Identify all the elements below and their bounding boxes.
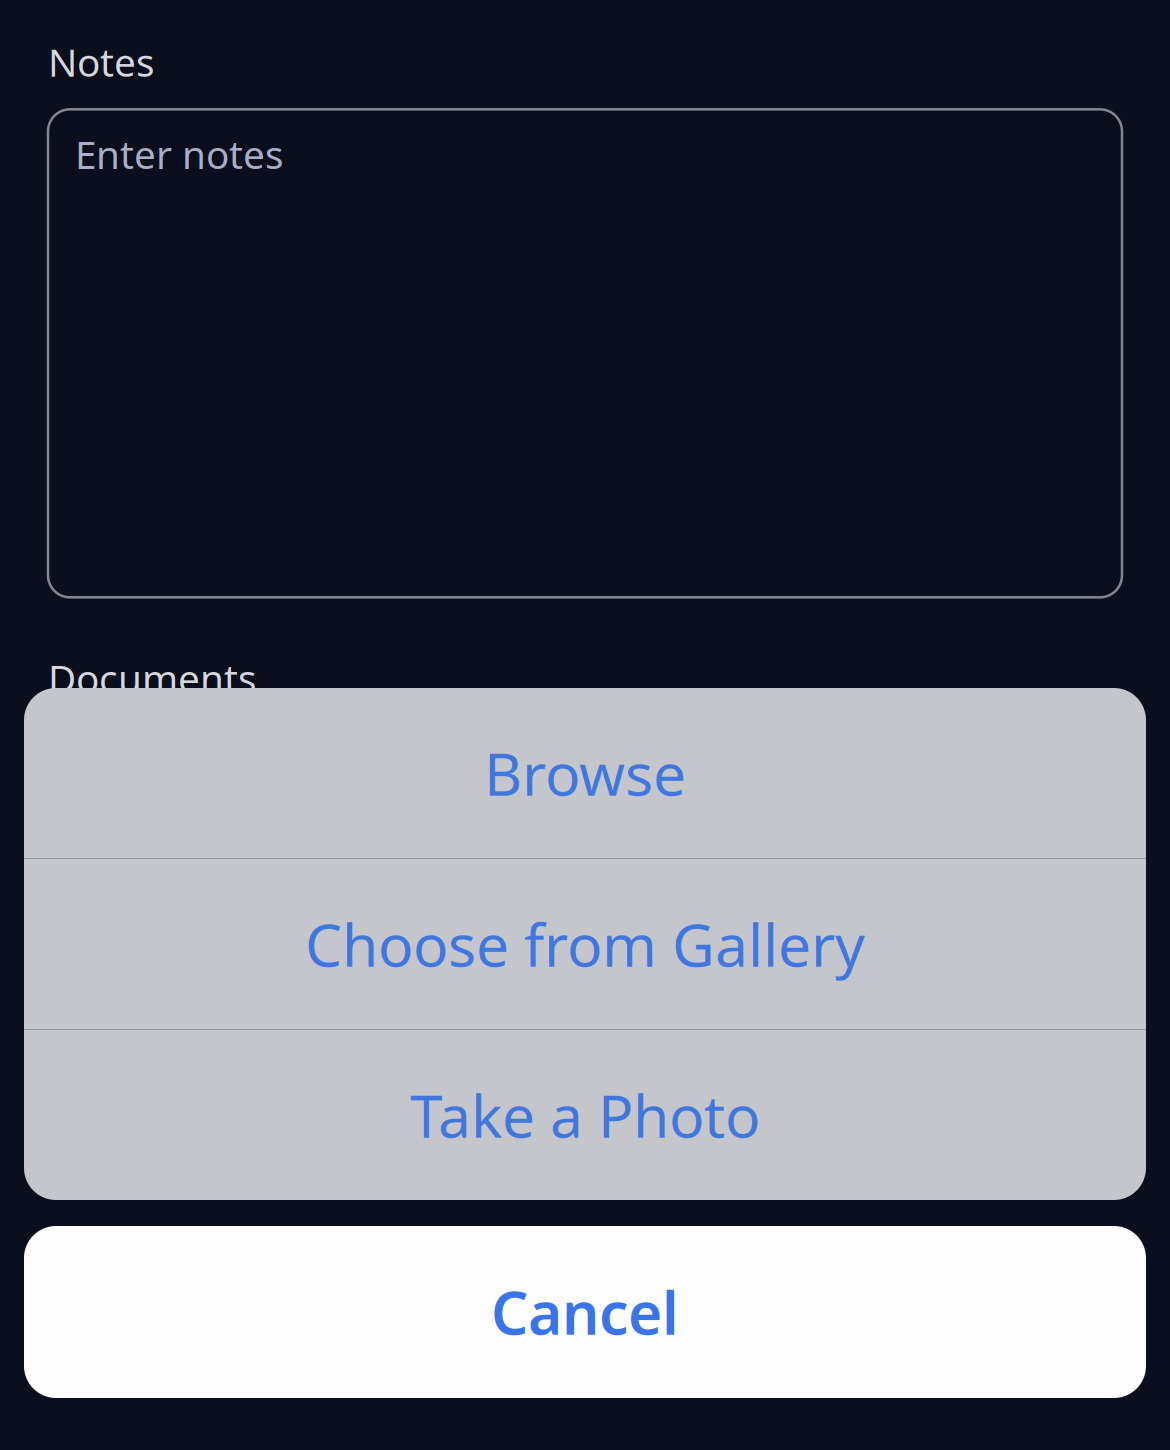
staticText: Choose from Gallery <box>305 905 865 983</box>
staticText: Enter notes <box>75 128 284 180</box>
button[interactable]: Browse <box>24 688 1146 858</box>
staticText: Documents <box>48 652 257 704</box>
staticText: Notes <box>48 36 155 87</box>
button[interactable]: Take a Photo <box>24 1030 1146 1200</box>
button[interactable]: Choose from Gallery <box>24 859 1146 1029</box>
button[interactable]: Cancel <box>24 1226 1146 1398</box>
staticText: Take a Photo <box>410 1076 760 1154</box>
staticText: Browse <box>484 734 686 812</box>
staticText: Cancel <box>491 1273 679 1351</box>
